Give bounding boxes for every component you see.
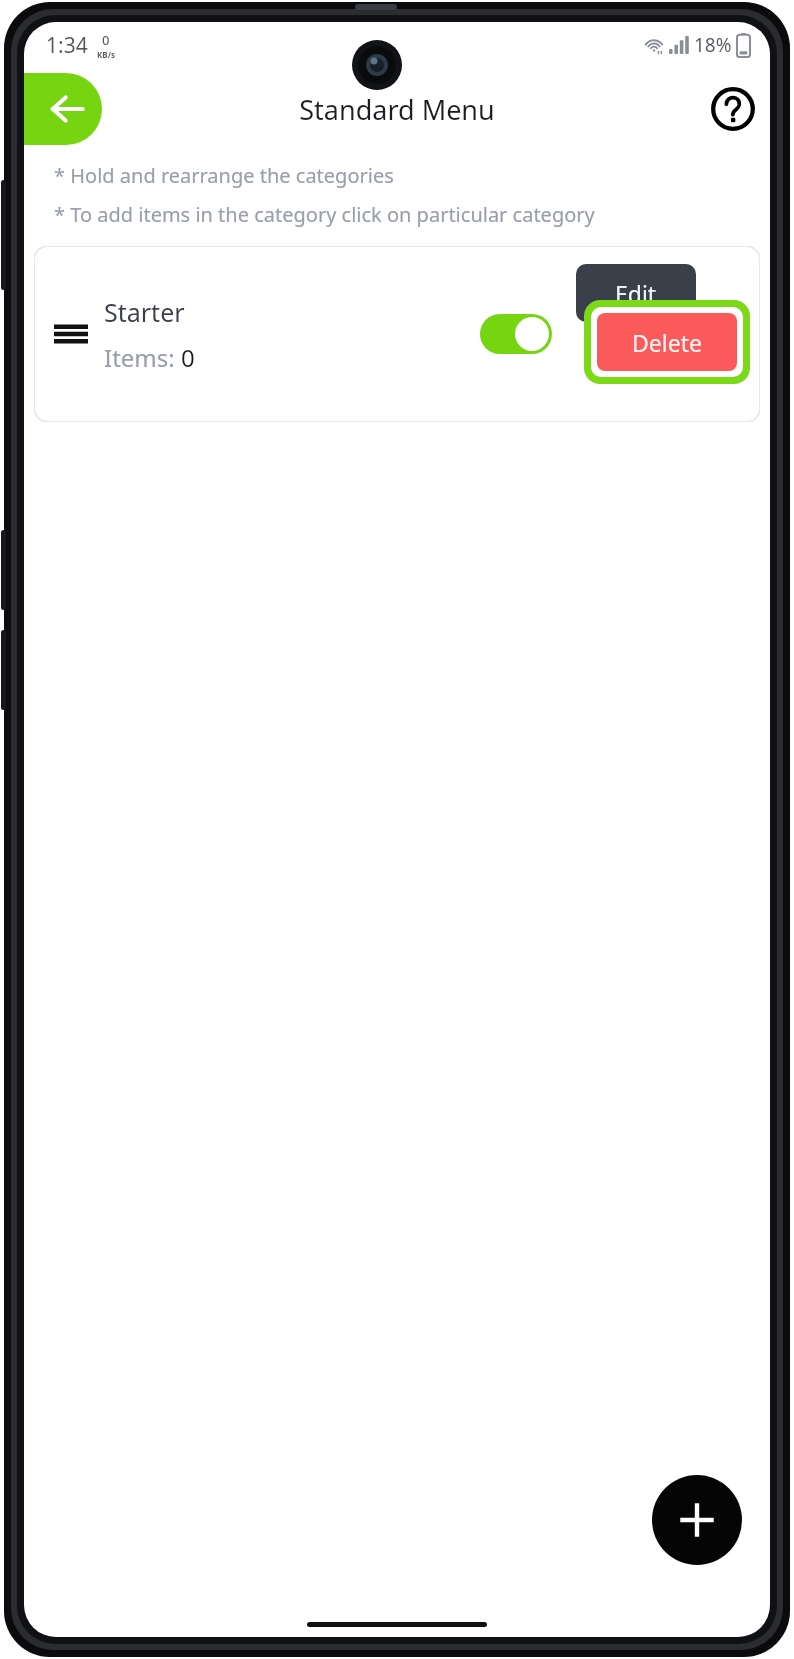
staticText: 0	[181, 341, 195, 374]
staticText: * To add items in the category click on …	[54, 201, 595, 228]
button[interactable]: Delete	[597, 313, 737, 371]
staticText: Items:	[104, 341, 181, 374]
staticText: Starter	[104, 295, 185, 329]
button[interactable]: Add category	[652, 1475, 742, 1565]
staticText: Delete	[632, 327, 702, 358]
button[interactable]: Help	[706, 82, 760, 136]
staticText: Edit	[615, 278, 657, 309]
staticText: 0	[102, 31, 110, 49]
button[interactable]: Toggle category	[480, 314, 552, 354]
staticText: KB/s	[97, 49, 115, 60]
button[interactable]: Back	[24, 73, 102, 145]
staticText: 1:34	[46, 31, 88, 60]
staticText: * Hold and rearrange the categories	[54, 162, 394, 189]
staticText: 18%	[694, 32, 732, 58]
button[interactable]: Edit	[576, 264, 696, 322]
button[interactable]: Starter	[34, 246, 760, 422]
staticText: Standard Menu	[299, 91, 495, 128]
